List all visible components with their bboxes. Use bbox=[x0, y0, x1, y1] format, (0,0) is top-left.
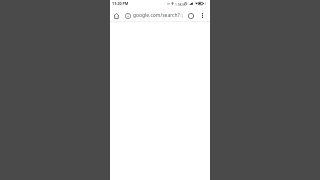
button[interactable]: Search or type URL bbox=[123, 10, 185, 21]
staticText: 1.9K/s bbox=[175, 2, 185, 6]
staticText: 11:20 PM bbox=[112, 1, 129, 6]
staticText: q bbox=[180, 12, 184, 19]
button[interactable]: Home bbox=[111, 10, 122, 21]
button[interactable]: Tabs bbox=[185, 10, 196, 21]
staticText: google.com/search? bbox=[133, 12, 180, 19]
button[interactable]: More options bbox=[197, 10, 208, 21]
